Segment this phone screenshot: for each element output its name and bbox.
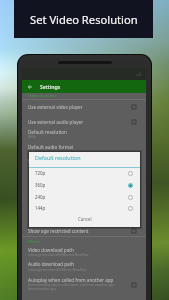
staticText: Default audio format	[28, 144, 74, 150]
staticText: Other	[28, 239, 40, 245]
staticText: Default resolution	[35, 154, 81, 161]
staticText: /storage/emulated/0/Movies/NewPipe	[28, 252, 89, 257]
button[interactable]: Video & audio	[28, 93, 56, 99]
button[interactable]: Use external audio player	[28, 119, 84, 125]
staticText: Video & audio	[28, 93, 56, 99]
staticText: Use external audio player	[28, 119, 84, 125]
button[interactable]: Audio download path	[28, 261, 75, 267]
staticText: 144p	[35, 205, 46, 211]
other: Back	[27, 84, 33, 90]
button[interactable]: Cancel	[72, 215, 98, 223]
staticText: 720p	[35, 170, 46, 176]
staticText: Default video format	[28, 158, 73, 164]
other: Use external video player	[132, 105, 136, 109]
staticText: Set Video Resolution	[30, 12, 138, 27]
staticText: Audio download path	[28, 261, 75, 267]
button[interactable]: Autoplay when called from another app	[28, 277, 114, 283]
staticText: Cancel	[78, 216, 92, 222]
other: Use external audio player	[132, 120, 136, 124]
staticText: Show age restricted content	[28, 228, 89, 234]
staticText: Automatically play a video when not from…	[28, 282, 115, 287]
button[interactable]: 720p	[29, 167, 140, 179]
button[interactable]: Show age restricted content	[28, 228, 89, 234]
staticText: Settings	[40, 83, 61, 90]
button[interactable]: 360p	[29, 179, 140, 191]
button[interactable]: 144p	[29, 202, 140, 214]
button[interactable]: Use external video player	[28, 104, 83, 110]
staticText: webm	[28, 163, 38, 168]
staticText: Use external video player	[28, 104, 83, 110]
staticText: 360p	[28, 134, 36, 139]
button[interactable]: Other	[28, 239, 40, 245]
button[interactable]: Video download path	[28, 247, 74, 253]
staticText: Video download path	[28, 247, 74, 253]
button[interactable]: Default resolution	[28, 129, 67, 135]
button[interactable]: Default video format	[28, 158, 73, 164]
other: Autoplay when called from another app	[132, 283, 136, 287]
other: Show age restricted content	[132, 229, 136, 233]
staticText: Autoplay when called from another app	[28, 277, 114, 283]
staticText: /storage/emulated/0/Music/NewPipe	[28, 267, 87, 272]
staticText: Default resolution	[28, 129, 67, 135]
button[interactable]: Back	[22, 80, 146, 93]
staticText: m4a	[28, 149, 36, 154]
button[interactable]: Set Video Resolution	[14, 0, 153, 38]
staticText: 360p	[35, 182, 46, 188]
staticText: 240p	[35, 194, 46, 200]
button[interactable]: 240p	[29, 191, 140, 203]
button[interactable]: Default audio format	[28, 144, 74, 150]
staticText: from another app	[28, 286, 57, 291]
